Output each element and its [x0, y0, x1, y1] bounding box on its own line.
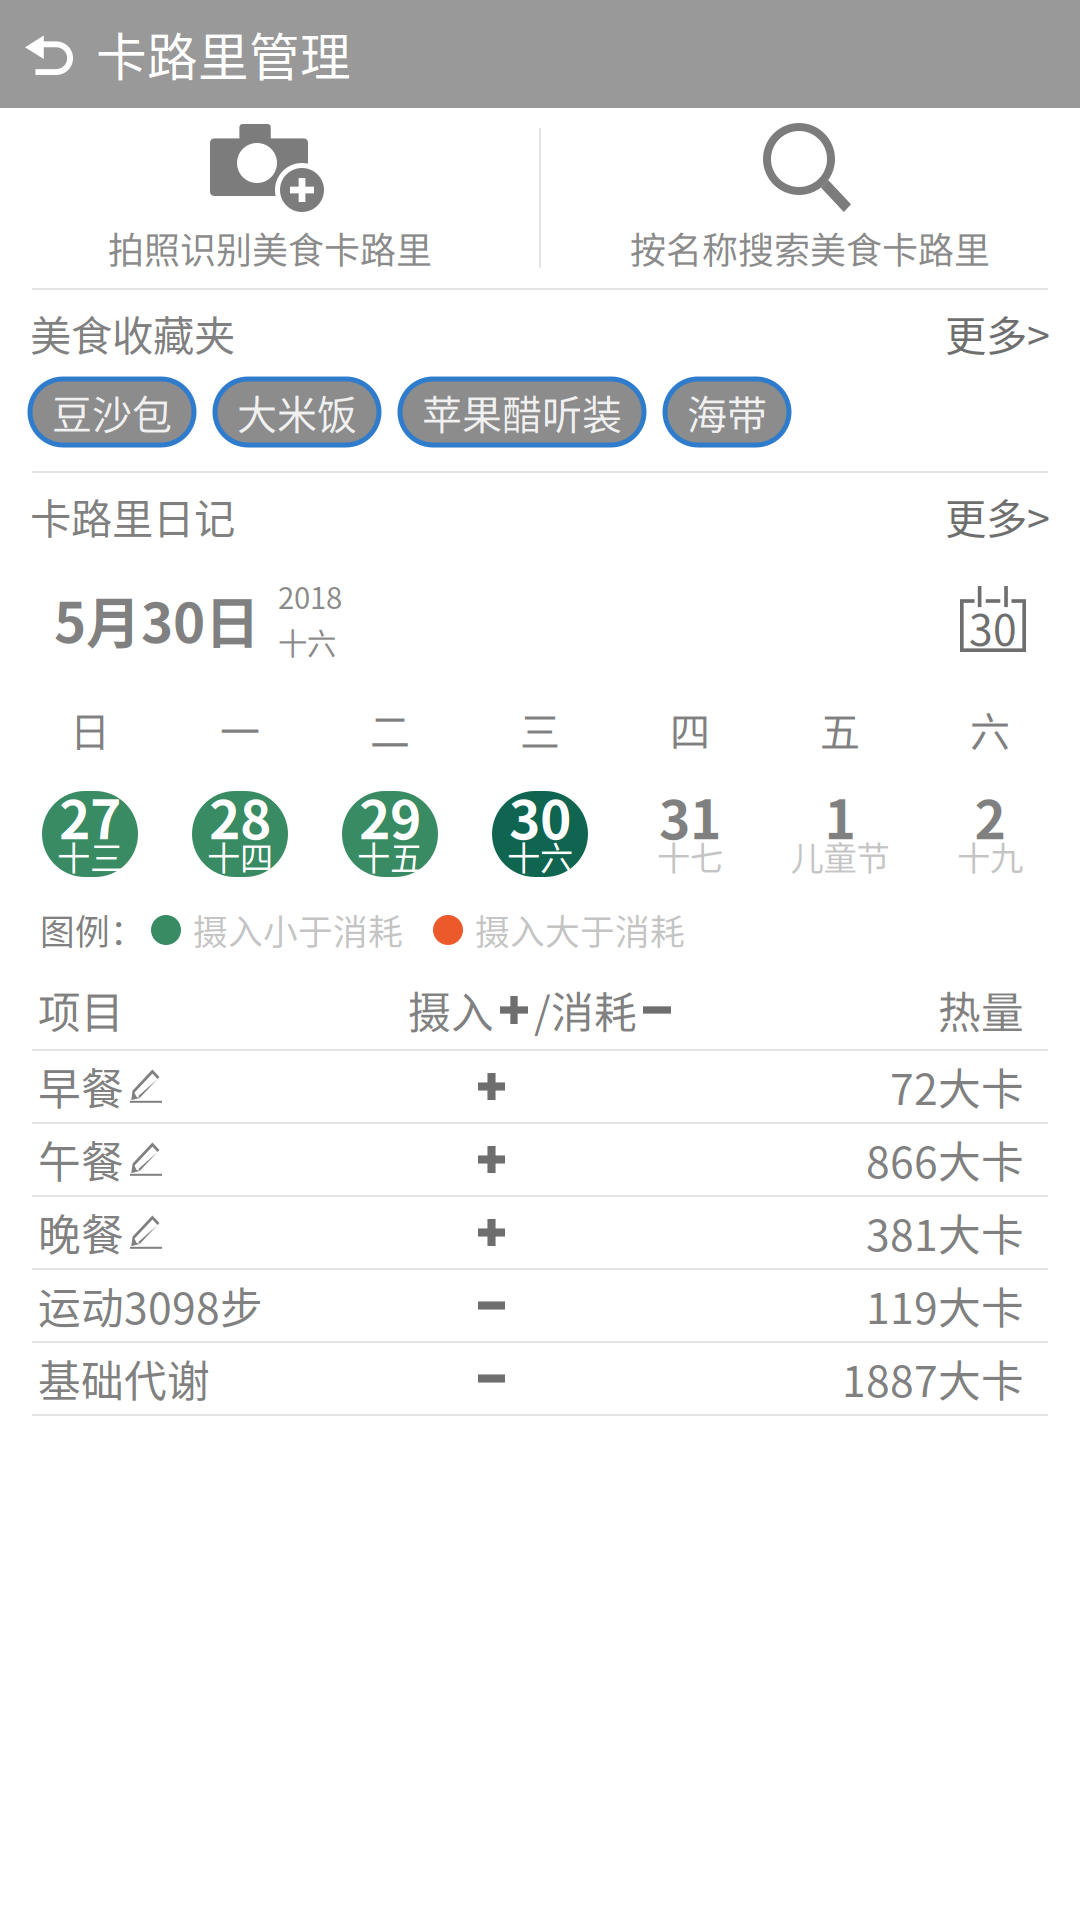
- staticText: 摄入: [408, 979, 494, 1041]
- staticText: 2: [974, 792, 1005, 840]
- staticText: 运动3098步: [38, 1275, 263, 1336]
- staticText: 六: [970, 700, 1010, 758]
- staticText: 卡路里日记: [30, 486, 235, 546]
- staticText: 苹果醋听装: [422, 383, 622, 441]
- staticText: 5月30日: [54, 579, 260, 659]
- button[interactable]: 2: [915, 783, 1065, 885]
- staticText: 美食收藏夹: [30, 303, 235, 363]
- staticText: 午餐: [38, 1129, 124, 1190]
- staticText: 摄入大于消耗: [475, 905, 685, 955]
- staticText: 更多>: [945, 303, 1050, 363]
- staticText: 十五: [357, 840, 423, 872]
- staticText: 一: [220, 700, 260, 758]
- staticText: 项目: [38, 979, 124, 1041]
- staticText: 30: [509, 792, 571, 840]
- staticText: 十九: [957, 840, 1023, 872]
- button[interactable]: 拍照识别美食卡路里: [0, 108, 540, 288]
- staticText: 29: [359, 792, 421, 840]
- staticText: 早餐: [38, 1056, 124, 1117]
- staticText: 27: [59, 792, 121, 840]
- staticText: 儿童节: [790, 840, 889, 872]
- button[interactable]: 27: [15, 783, 165, 885]
- button[interactable]: 30: [465, 783, 615, 885]
- staticText: 五: [820, 700, 860, 758]
- button[interactable]: 29: [315, 783, 465, 885]
- staticText: 十四: [207, 840, 273, 872]
- staticText: 1887大卡: [842, 1348, 1024, 1409]
- staticText: 866大卡: [866, 1129, 1024, 1190]
- staticText: 72大卡: [890, 1056, 1024, 1117]
- staticText: /消耗: [534, 979, 637, 1041]
- staticText: 119大卡: [866, 1275, 1024, 1336]
- staticText: 二: [370, 700, 410, 758]
- button[interactable]: 基础代谢: [0, 1343, 1080, 1416]
- button[interactable]: 午餐: [0, 1124, 1080, 1197]
- staticText: 豆沙包: [52, 383, 172, 441]
- staticText: 十三: [57, 840, 123, 872]
- staticText: 大米饭: [237, 383, 357, 441]
- button[interactable]: 晚餐: [0, 1197, 1080, 1270]
- staticText: 三: [520, 700, 560, 758]
- staticText: 按名称搜索美食卡路里: [630, 222, 990, 274]
- staticText: 30: [969, 596, 1017, 658]
- staticText: 更多>: [945, 486, 1050, 546]
- staticText: 2018: [278, 575, 342, 617]
- staticText: 海带: [687, 383, 767, 441]
- button[interactable]: 豆沙包: [30, 379, 194, 445]
- button[interactable]: 运动3098步: [0, 1270, 1080, 1343]
- staticText: 四: [670, 700, 710, 758]
- staticText: 31: [659, 792, 721, 840]
- button[interactable]: 大米饭: [215, 379, 379, 445]
- staticText: 28: [209, 792, 271, 840]
- staticText: 热量: [938, 979, 1024, 1041]
- button[interactable]: Pick date: [960, 586, 1026, 652]
- staticText: 十六: [278, 620, 336, 663]
- button[interactable]: Back: [0, 0, 96, 108]
- staticText: 381大卡: [866, 1202, 1024, 1263]
- staticText: 摄入小于消耗: [193, 905, 403, 955]
- button[interactable]: 28: [165, 783, 315, 885]
- button[interactable]: 海带: [665, 379, 789, 445]
- button[interactable]: 苹果醋听装: [400, 379, 644, 445]
- button[interactable]: 更多>: [945, 303, 1050, 363]
- staticText: 卡路里管理: [96, 17, 351, 91]
- staticText: 图例：: [40, 905, 145, 955]
- button[interactable]: 按名称搜索美食卡路里: [540, 108, 1080, 288]
- button[interactable]: 1: [765, 783, 915, 885]
- button[interactable]: 早餐: [0, 1051, 1080, 1124]
- staticText: 日: [70, 700, 110, 758]
- staticText: 基础代谢: [38, 1348, 210, 1409]
- staticText: 拍照识别美食卡路里: [108, 222, 432, 274]
- staticText: 十六: [507, 840, 573, 872]
- button[interactable]: 31: [615, 783, 765, 885]
- staticText: 晚餐: [38, 1202, 124, 1263]
- staticText: 十七: [657, 840, 723, 872]
- button[interactable]: 更多>: [945, 486, 1050, 546]
- staticText: 1: [824, 792, 855, 840]
